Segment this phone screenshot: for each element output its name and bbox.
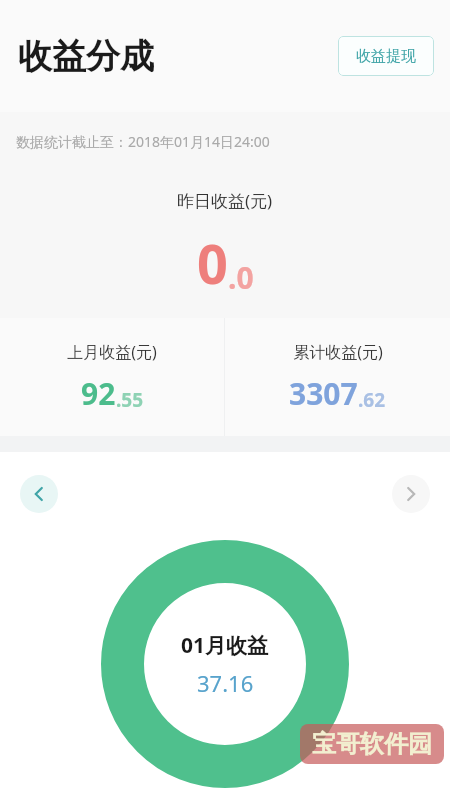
staticText: 宝哥软件园 (312, 729, 432, 759)
staticText: 数据统计截止至：2018年01月14日24:00 (16, 132, 270, 151)
button[interactable]: 上月收益(元) (0, 318, 224, 436)
staticText: 累计收益(元) (293, 341, 383, 363)
staticText: 昨日收益(元) (177, 189, 273, 212)
staticText: 0 (197, 226, 228, 300)
staticText: 01月收益 (181, 631, 269, 660)
staticText: 37.16 (197, 668, 254, 698)
button[interactable]: 收益提现 (338, 36, 434, 76)
staticText: 收益分成 (18, 35, 154, 78)
staticText: .62 (358, 387, 386, 413)
staticText: .55 (116, 387, 144, 413)
button[interactable]: Next month (392, 475, 430, 513)
button[interactable]: 累计收益(元) (225, 318, 450, 436)
staticText: 上月收益(元) (67, 341, 157, 363)
staticText: 收益提现 (356, 47, 416, 66)
staticText: .0 (228, 257, 254, 298)
staticText: 92 (81, 373, 116, 414)
staticText: 3307 (289, 373, 358, 414)
button[interactable]: Previous month (20, 475, 58, 513)
